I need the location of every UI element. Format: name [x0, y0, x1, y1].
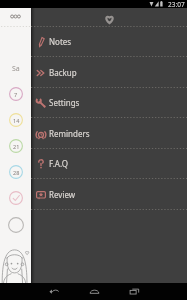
staticText: 14: [13, 117, 20, 124]
button[interactable]: [9, 191, 23, 205]
button[interactable]: F.A.Q: [31, 148, 187, 179]
staticText: Review: [49, 189, 76, 200]
button[interactable]: Home: [79, 283, 109, 300]
button[interactable]: 7: [9, 87, 23, 101]
button[interactable]: Recents: [119, 283, 149, 300]
staticText: 28: [13, 169, 20, 176]
button[interactable]: Settings: [31, 87, 187, 118]
staticText: F.A.Q: [49, 158, 68, 169]
button[interactable]: Notes: [31, 26, 187, 57]
button[interactable]: Back: [39, 283, 69, 300]
staticText: 23:07: [168, 0, 185, 8]
staticText: Notes: [49, 36, 72, 47]
button[interactable]: 14: [9, 113, 23, 127]
staticText: Backup: [49, 67, 77, 78]
staticText: 7: [14, 91, 18, 98]
button[interactable]: Reminders: [31, 118, 187, 149]
staticText: Reminders: [49, 128, 90, 139]
staticText: 21: [13, 143, 20, 150]
button[interactable]: Add entry: [8, 217, 24, 233]
button[interactable]: Backup: [31, 57, 187, 88]
staticText: Settings: [49, 97, 80, 108]
staticText: Sa: [12, 64, 20, 74]
button[interactable]: 28: [9, 165, 23, 179]
button[interactable]: 21: [9, 139, 23, 153]
button[interactable]: Review: [31, 179, 187, 210]
